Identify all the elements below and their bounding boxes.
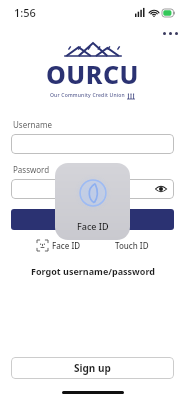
staticText: Log in: [78, 213, 108, 227]
staticText: Password: [13, 164, 50, 175]
button[interactable]: Show password: [11, 179, 174, 199]
button[interactable]: Log in: [11, 209, 174, 230]
staticText: Username: [13, 119, 52, 130]
button[interactable]: Sign up: [11, 357, 174, 379]
staticText: Face ID: [77, 220, 109, 232]
staticText: OURCU: [46, 57, 139, 91]
staticText: Our Community Credit Union: [50, 92, 125, 99]
button[interactable]: More options: [155, 24, 185, 42]
button[interactable]: Touch ID: [111, 238, 153, 253]
button[interactable]: [11, 134, 174, 154]
staticText: Sign up: [74, 361, 111, 375]
button[interactable]: Face ID: [33, 238, 85, 253]
button[interactable]: Forgot username/password: [11, 263, 174, 279]
staticText: 1:56: [14, 5, 36, 20]
staticText: Face ID: [52, 240, 81, 251]
staticText: Forgot username/password: [31, 265, 155, 277]
staticText: Touch ID: [115, 240, 149, 251]
other: Face ID prompt: [55, 163, 130, 240]
button[interactable]: Show password: [154, 182, 168, 196]
